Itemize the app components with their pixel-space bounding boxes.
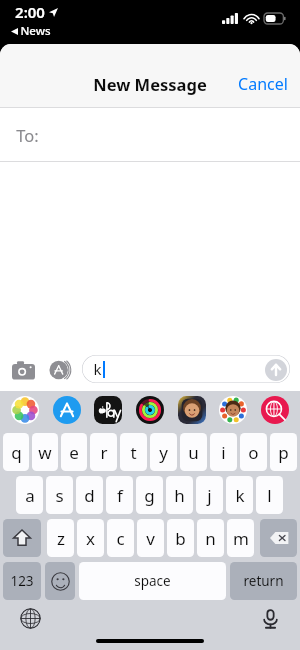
button[interactable]: Send (264, 358, 287, 381)
button[interactable]: k (226, 476, 253, 514)
button[interactable]: App Store (46, 356, 73, 383)
button[interactable]: k (82, 355, 290, 383)
staticText: l (267, 484, 272, 507)
button[interactable]: r (90, 433, 117, 471)
button[interactable]: q (3, 433, 29, 471)
button[interactable]: n (197, 519, 224, 557)
staticText: c (116, 527, 125, 550)
staticText: s (55, 484, 64, 507)
staticText: d (84, 484, 95, 507)
button[interactable]: return (230, 562, 297, 600)
staticText: q (11, 441, 22, 464)
staticText: k (235, 484, 245, 507)
button[interactable]: s (46, 476, 73, 514)
button[interactable]: Backspace (260, 519, 297, 557)
button[interactable]: j (196, 476, 223, 514)
staticText: w (38, 441, 52, 464)
staticText: g (144, 484, 155, 507)
button[interactable]: Photos (6, 393, 44, 427)
button[interactable]: App Store (48, 393, 86, 427)
staticText: r (100, 441, 108, 464)
staticText: space (134, 572, 171, 590)
button[interactable]: b (167, 519, 194, 557)
button[interactable]: Back to News (11, 23, 51, 39)
button[interactable]: h (166, 476, 193, 514)
button[interactable]: e (61, 433, 87, 471)
staticText: u (188, 441, 199, 464)
button[interactable]: i (210, 433, 237, 471)
staticText: f (117, 484, 123, 507)
button[interactable]: g (136, 476, 163, 514)
button[interactable]: c (107, 519, 134, 557)
staticText: To: (16, 124, 39, 146)
button[interactable]: u (180, 433, 207, 471)
button[interactable]: x (77, 519, 104, 557)
staticText: n (205, 527, 216, 550)
staticText: j (207, 484, 212, 507)
staticText: i (221, 441, 226, 464)
button[interactable]: Memoji 2 (214, 393, 252, 427)
button[interactable]: To: (0, 108, 300, 162)
staticText: return (243, 572, 284, 590)
button[interactable]: Memoji (173, 393, 211, 427)
button[interactable]: Emoji (45, 562, 75, 600)
staticText: v (146, 527, 155, 550)
button[interactable]: z (47, 519, 74, 557)
staticText: x (86, 527, 95, 550)
button[interactable]: w (32, 433, 58, 471)
staticText: p (278, 441, 289, 464)
staticText: o (248, 441, 259, 464)
button[interactable]: 123 (3, 562, 41, 600)
button[interactable]: Fitness (131, 393, 169, 427)
button[interactable]: d (76, 476, 103, 514)
button[interactable]: space (79, 562, 226, 600)
button[interactable]: Change keyboard (16, 604, 44, 632)
staticText: News (20, 23, 51, 39)
button[interactable]: y (150, 433, 177, 471)
staticText: z (57, 527, 65, 550)
button[interactable]: t (120, 433, 147, 471)
staticText: a (25, 484, 35, 507)
staticText: b (175, 527, 186, 550)
button[interactable]: Shift (3, 519, 41, 557)
button[interactable]: m (227, 519, 254, 557)
button[interactable]: p (270, 433, 297, 471)
button[interactable]: Dictation (256, 604, 284, 632)
button[interactable]: a (16, 476, 43, 514)
button[interactable]: Camera (10, 356, 37, 383)
staticText: m (233, 527, 249, 550)
button[interactable]: o (240, 433, 267, 471)
staticText: Cancel (238, 73, 288, 95)
staticText: e (69, 441, 79, 464)
staticText: 123 (10, 572, 34, 590)
staticText: New Message (93, 73, 207, 95)
button[interactable]: Apple Pay (89, 393, 127, 427)
staticText: k (93, 359, 102, 379)
button[interactable]: v (137, 519, 164, 557)
staticText: y (159, 441, 168, 464)
staticText: h (174, 484, 185, 507)
staticText: t (130, 441, 137, 464)
button[interactable]: Cancel (226, 65, 300, 103)
button[interactable]: l (256, 476, 283, 514)
button[interactable]: f (106, 476, 133, 514)
staticText: 2:00 (15, 2, 45, 22)
button[interactable]: Image search (256, 393, 294, 427)
